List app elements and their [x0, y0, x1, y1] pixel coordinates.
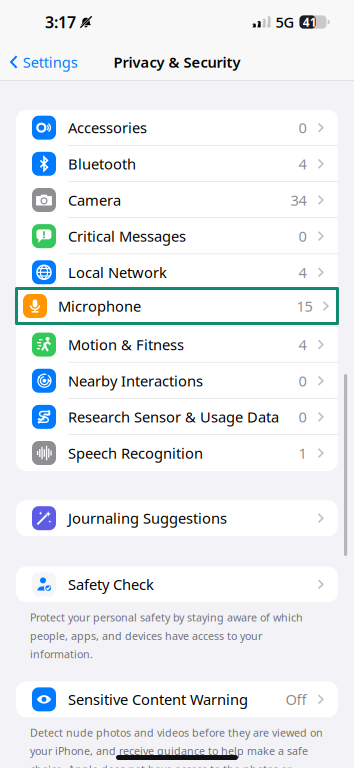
button[interactable]: Speech Recognition [16, 435, 338, 471]
staticText: 0 [298, 118, 306, 137]
button[interactable]: Safety Check [16, 566, 338, 602]
button[interactable]: Settings [0, 44, 86, 80]
staticText: 0 [298, 226, 306, 246]
staticText: 4 [298, 154, 306, 174]
button[interactable]: Nearby Interactions [16, 363, 338, 399]
staticText: Critical Messages [68, 226, 186, 246]
staticText: 5G [275, 12, 294, 32]
staticText: Bluetooth [68, 154, 136, 174]
staticText: Speech Recognition [68, 443, 203, 463]
button[interactable]: Accessories [16, 110, 338, 146]
staticText: Privacy & Security [113, 52, 240, 72]
button[interactable]: Sensitive Content Warning [16, 681, 338, 717]
staticText: Accessories [68, 118, 147, 137]
button[interactable]: Journaling Suggestions [16, 500, 338, 536]
button[interactable]: Critical Messages [16, 218, 338, 254]
staticText: Research Sensor & Usage Data [68, 407, 279, 427]
staticText: Protect your personal safety by staying … [30, 610, 303, 661]
staticText: 0 [298, 371, 306, 390]
staticText: Nearby Interactions [68, 371, 203, 390]
staticText: 34 [290, 190, 306, 210]
staticText: 3:17 [45, 11, 76, 33]
staticText: Safety Check [68, 575, 154, 594]
staticText: Microphone [58, 296, 141, 316]
staticText: 4 [298, 335, 306, 354]
staticText: Detect nude photos and videos before the… [30, 725, 323, 768]
button[interactable]: Camera [16, 182, 338, 218]
button[interactable]: Microphone [16, 290, 338, 326]
button[interactable]: Bluetooth [16, 146, 338, 182]
staticText: Journaling Suggestions [68, 508, 227, 528]
staticText: 41 [303, 14, 317, 30]
staticText: 15 [290, 299, 306, 318]
staticText: Microphone [68, 299, 151, 318]
staticText: Off [285, 690, 306, 709]
staticText: Camera [68, 190, 121, 210]
staticText: Local Network [68, 262, 167, 282]
button[interactable]: Local Network [16, 254, 338, 290]
staticText: 4 [298, 262, 306, 282]
staticText: Sensitive Content Warning [68, 690, 248, 709]
staticText: 1 [298, 443, 306, 463]
button[interactable]: Motion & Fitness [16, 326, 338, 363]
staticText: Settings [23, 52, 78, 72]
staticText: Motion & Fitness [68, 335, 184, 354]
button[interactable]: Research Sensor & Usage Data [16, 399, 338, 435]
staticText: 15 [296, 296, 312, 316]
staticText: 0 [298, 407, 306, 427]
